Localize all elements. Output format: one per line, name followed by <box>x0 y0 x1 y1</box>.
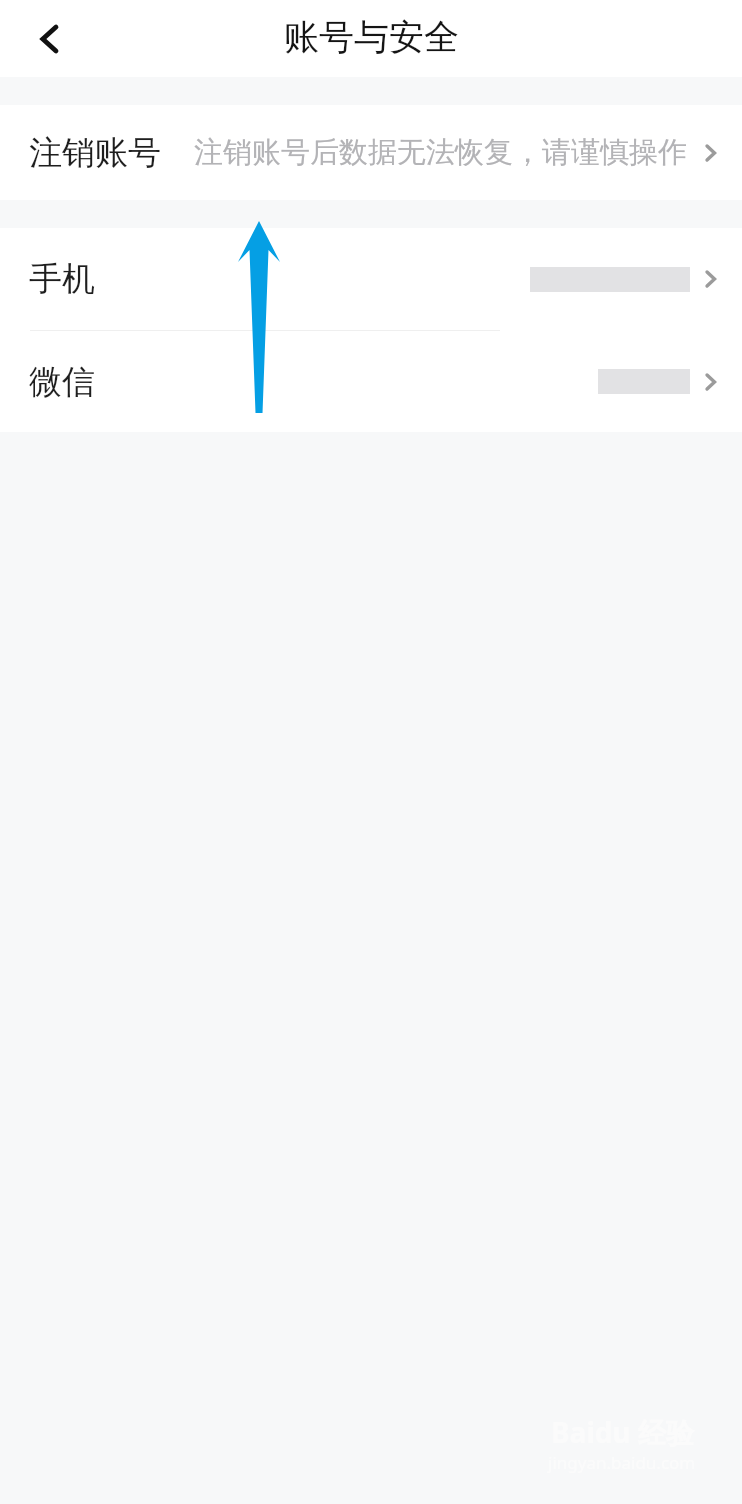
button[interactable]: Back <box>14 3 86 75</box>
staticText: 手机 <box>29 258 95 300</box>
staticText: 注销账号 <box>29 132 161 174</box>
button[interactable]: 微信 <box>0 331 742 432</box>
button[interactable]: 注销账号 <box>0 105 742 200</box>
staticText: 注销账号后数据无法恢复，请谨慎操作 <box>194 134 687 171</box>
staticText: 微信 <box>29 361 95 403</box>
button[interactable]: 手机 <box>0 228 742 330</box>
staticText: 账号与安全 <box>284 15 459 59</box>
